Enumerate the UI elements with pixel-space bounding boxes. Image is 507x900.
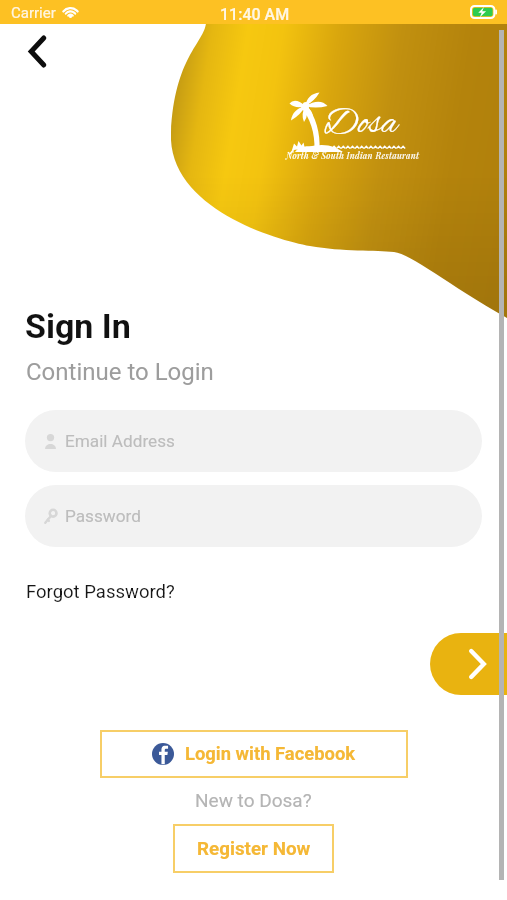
staticText: Forgot Password? <box>26 581 175 603</box>
button[interactable]: Forgot Password? <box>26 581 175 603</box>
staticText: North & South Indian Restaurant <box>286 150 420 161</box>
button[interactable]: Back <box>12 26 62 76</box>
button[interactable]: Email Address <box>25 410 482 472</box>
button[interactable]: Login with Facebook <box>100 730 408 778</box>
staticText: Email Address <box>65 431 175 451</box>
staticText: Carrier <box>11 4 56 22</box>
staticText: Sign In <box>25 306 131 346</box>
staticText: Register Now <box>197 838 311 860</box>
button[interactable]: Password <box>25 485 482 547</box>
button[interactable]: Register Now <box>173 824 334 873</box>
button[interactable]: Next <box>430 633 507 695</box>
staticText: New to Dosa? <box>195 789 312 811</box>
staticText: Password <box>65 506 141 526</box>
staticText: Login with Facebook <box>185 743 356 765</box>
staticText: 11:40 AM <box>220 5 290 24</box>
staticText: Continue to Login <box>26 358 214 386</box>
staticText: Dosa <box>324 101 398 147</box>
